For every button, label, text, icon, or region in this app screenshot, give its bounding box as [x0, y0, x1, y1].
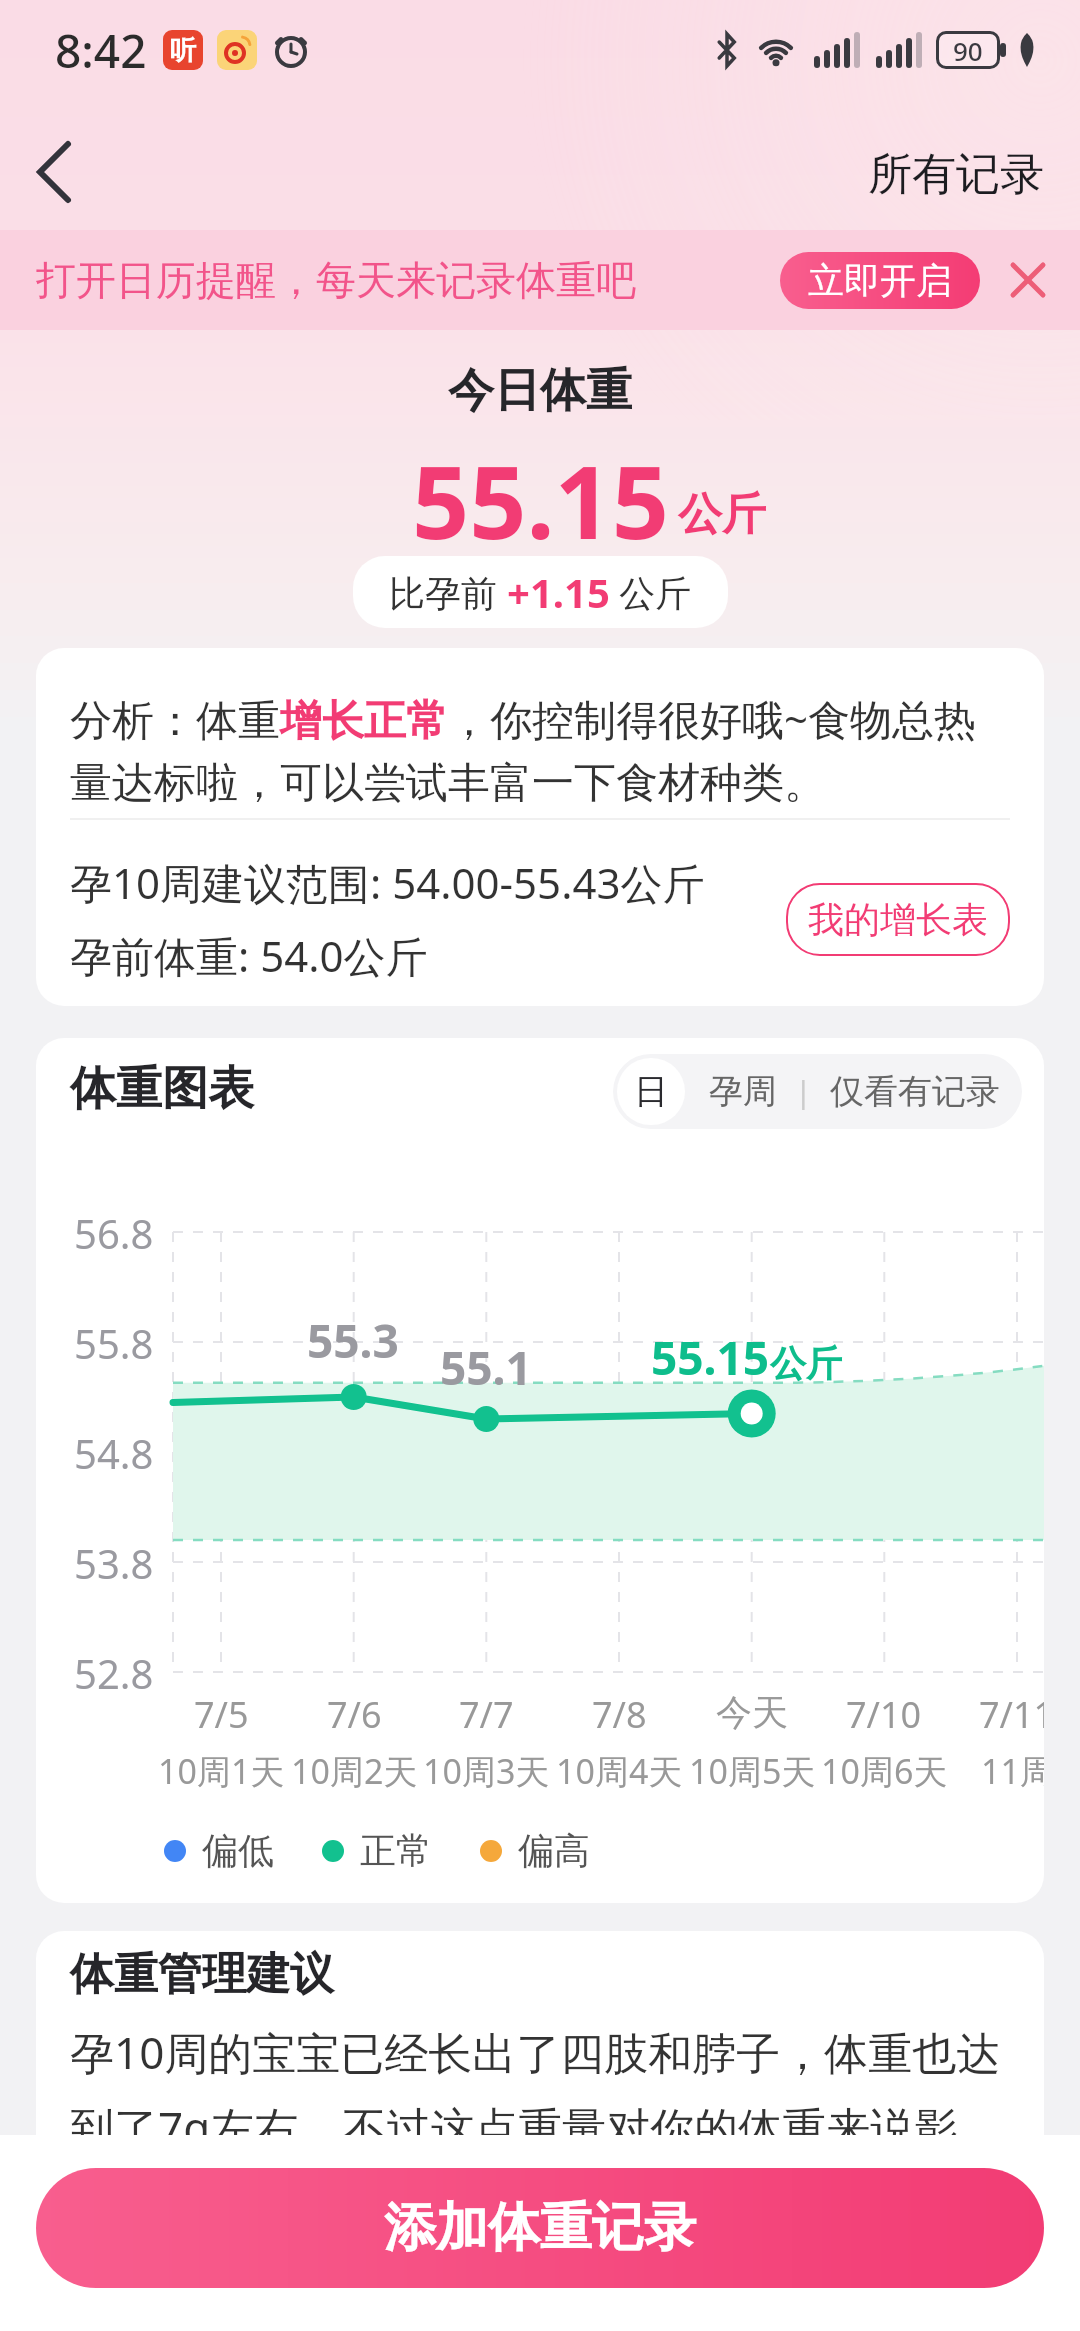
button[interactable]: 日 — [617, 1058, 685, 1125]
staticText: 11周 — [981, 1748, 1044, 1794]
staticText: 7/5 — [194, 1690, 249, 1739]
staticText: 10周1天 — [158, 1748, 285, 1794]
button[interactable]: 我的增长表 — [786, 883, 1010, 956]
staticText: 52.8 — [74, 1646, 154, 1698]
staticText: | — [795, 1071, 812, 1112]
staticText: 55.15 — [651, 1326, 770, 1389]
button[interactable]: 所有记录 — [868, 147, 1044, 202]
button[interactable]: 添加体重记录 — [36, 2168, 1044, 2288]
button[interactable] — [1006, 258, 1050, 302]
staticText: 7/11 — [979, 1690, 1044, 1739]
staticText: 偏低 — [202, 1828, 274, 1873]
button[interactable]: 立即开启 — [780, 252, 980, 309]
staticText: 添加体重记录 — [384, 2195, 696, 2261]
staticText: 53.8 — [74, 1536, 154, 1588]
staticText: 56.8 — [74, 1206, 154, 1258]
staticText: 孕周 — [709, 1070, 777, 1113]
staticText: 10周4天 — [556, 1748, 683, 1794]
staticText: 公斤 — [770, 1341, 842, 1386]
staticText: 7/10 — [846, 1690, 922, 1739]
staticText: 55.15 — [412, 432, 669, 568]
staticText: 正常 — [360, 1828, 432, 1873]
staticText: 体重管理建议 — [70, 1947, 334, 2002]
button[interactable] — [15, 134, 91, 210]
staticText: 比孕前 — [389, 568, 507, 617]
staticText: 日 — [634, 1070, 668, 1113]
button[interactable]: 孕周 — [709, 1070, 777, 1113]
staticText: 55.8 — [74, 1316, 154, 1368]
staticText: 10周2天 — [291, 1748, 418, 1794]
staticText: 54.8 — [74, 1426, 154, 1478]
staticText: 所有记录 — [868, 147, 1044, 202]
staticText: 55.1 — [440, 1336, 532, 1399]
staticText: 仅看有记录 — [830, 1070, 1000, 1113]
staticText: 公斤 — [610, 568, 692, 617]
staticText: 10周5天 — [689, 1748, 816, 1794]
staticText: 我的增长表 — [808, 897, 988, 942]
staticText: 孕10周的宝宝已经长出了四肢和脖子，体重也达到了7g左右，不过这点重量对你的体重… — [70, 2022, 1010, 2157]
staticText: 孕前体重: 54.0公斤 — [70, 927, 428, 984]
staticText: 7/6 — [327, 1690, 382, 1739]
staticText: 孕10周建议范围: 54.00-55.43公斤 — [70, 854, 705, 911]
staticText: 打开日历提醒，每天来记录体重吧 — [36, 255, 636, 305]
staticText: 公斤 — [678, 487, 766, 542]
staticText: 7/8 — [592, 1690, 647, 1739]
staticText: 今日体重 — [448, 362, 632, 420]
staticText: 分析：体重增长正常，你控制得很好哦~食物总热量达标啦，可以尝试丰富一下食材种类。 — [70, 690, 1010, 810]
staticText: 立即开启 — [808, 258, 952, 303]
staticText: 55.3 — [307, 1309, 399, 1372]
staticText: 10周6天 — [821, 1748, 948, 1794]
staticText: 今天 — [716, 1690, 788, 1735]
staticText: 7/7 — [459, 1690, 514, 1739]
staticText: 体重图表 — [70, 1060, 254, 1118]
staticText: 90 — [953, 33, 983, 68]
staticText: 10周3天 — [423, 1748, 550, 1794]
staticText: 8:42 — [55, 19, 147, 82]
button[interactable]: 仅看有记录 — [830, 1070, 1000, 1113]
staticText: +1.15 — [507, 565, 610, 619]
staticText: 偏高 — [518, 1828, 590, 1873]
staticText: 听 — [170, 34, 196, 67]
